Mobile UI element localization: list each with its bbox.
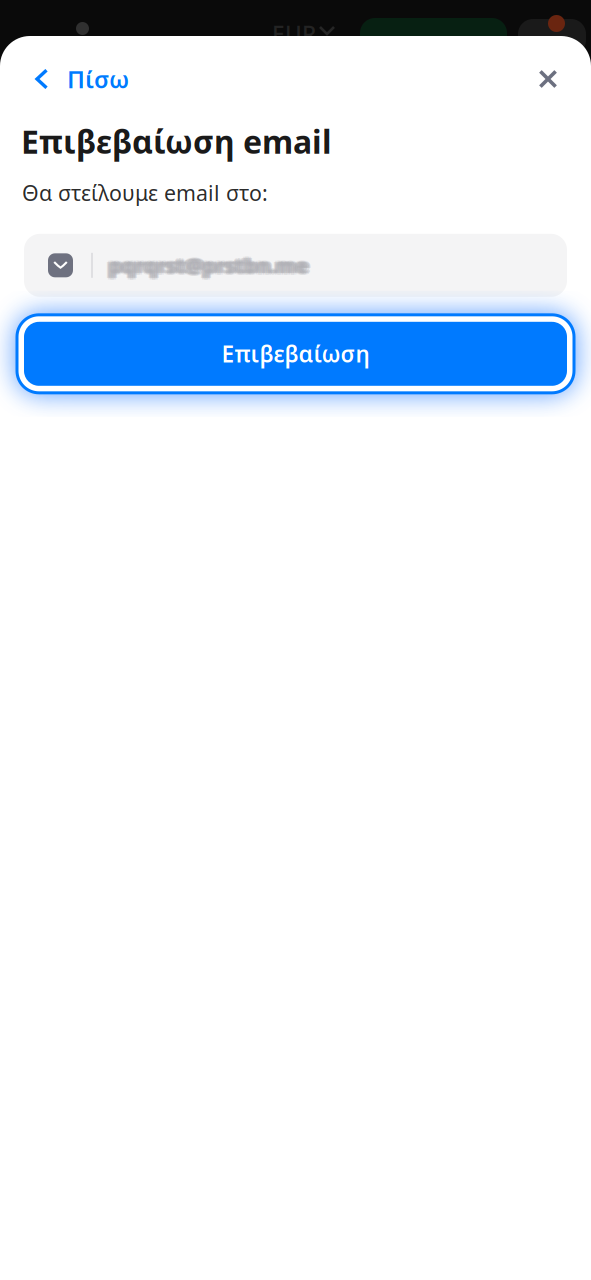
button[interactable]: Επιβεβαίωση [17, 315, 574, 393]
staticText: pqrqrst@prstbn.me [107, 252, 306, 279]
staticText: pqrqrst@prstbn.me [107, 253, 306, 280]
staticText: Επιβεβαίωση email [21, 120, 332, 162]
button[interactable]: Πίσω [0, 55, 143, 103]
staticText: Επιβεβαίωση [221, 339, 369, 369]
staticText: Πίσω [67, 63, 129, 95]
staticText: pqrqrst@prstbn.me [109, 252, 308, 279]
staticText: pqrqrst@prstbn.me [112, 252, 311, 279]
staticText: pqrqrst@prstbn.me [106, 252, 305, 279]
staticText: pqrqrst@prstbn.me [111, 251, 310, 277]
button[interactable]: Close [524, 55, 572, 103]
staticText: pqrqrst@prstbn.me [111, 252, 310, 279]
staticText: pqrqrst@prstbn.me [109, 254, 308, 280]
staticText: pqrqrst@prstbn.me [107, 251, 306, 277]
staticText: pqrqrst@prstbn.me [109, 250, 308, 277]
staticText: pqrqrst@prstbn.me [111, 253, 310, 280]
staticText: EUR [272, 19, 316, 49]
staticText: Θα στείλουμε email στο: [22, 178, 268, 207]
